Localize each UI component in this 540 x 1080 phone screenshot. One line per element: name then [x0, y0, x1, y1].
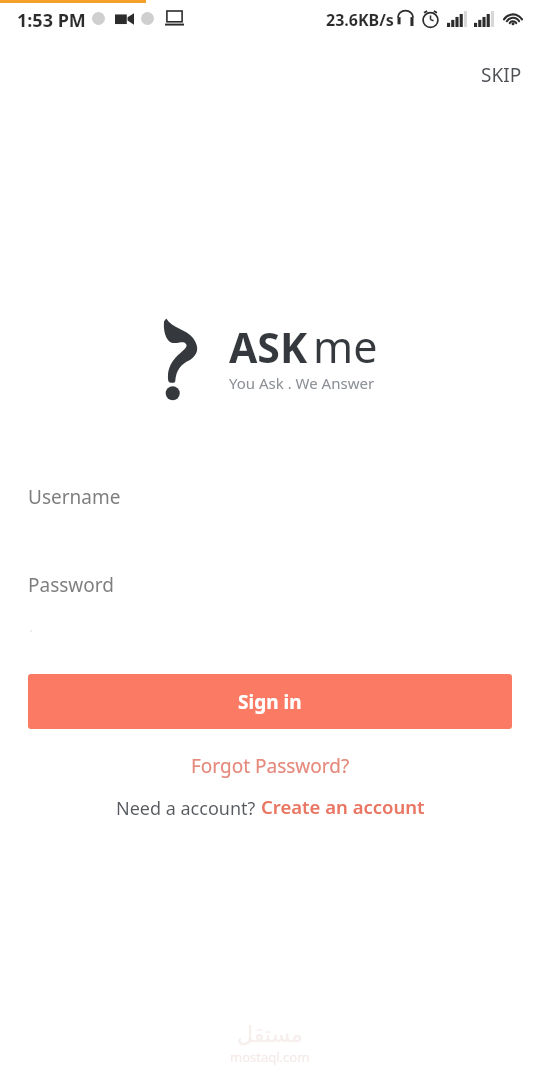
staticText: Sign in	[238, 689, 302, 715]
staticText: me	[313, 317, 378, 376]
other: Mobile signal SIM 1	[447, 11, 467, 27]
button[interactable]: Username	[0, 470, 540, 526]
staticText: Create an account	[261, 794, 425, 819]
other: Screen recording	[115, 13, 134, 25]
other: Wi-Fi	[502, 11, 524, 27]
staticText: mostaql.com	[230, 1048, 310, 1066]
other: Headset connected	[396, 10, 415, 27]
other: Notification	[92, 12, 105, 25]
staticText: ASK	[229, 319, 308, 375]
button[interactable]: Forgot Password?	[181, 748, 360, 784]
other: Cast to computer	[165, 11, 184, 26]
staticText: Need a account?	[116, 796, 261, 821]
staticText: Username	[28, 484, 121, 510]
button[interactable]: SKIP	[473, 56, 530, 94]
staticText: You Ask . We Answer	[229, 373, 375, 393]
button[interactable]: Password	[0, 558, 540, 614]
other: Mobile signal SIM 2	[474, 11, 494, 27]
staticText: Password	[28, 572, 114, 598]
staticText: مستقل	[237, 1022, 303, 1048]
other: Alarm set	[421, 9, 440, 28]
staticText: 1:53 PM	[17, 8, 86, 33]
staticText: Forgot Password?	[191, 753, 350, 779]
button[interactable]: Create an account	[261, 794, 425, 819]
button[interactable]: Sign in	[28, 674, 512, 729]
staticText: SKIP	[481, 62, 522, 88]
other: Notification	[141, 12, 154, 25]
staticText: 23.6KB/s	[326, 9, 394, 31]
